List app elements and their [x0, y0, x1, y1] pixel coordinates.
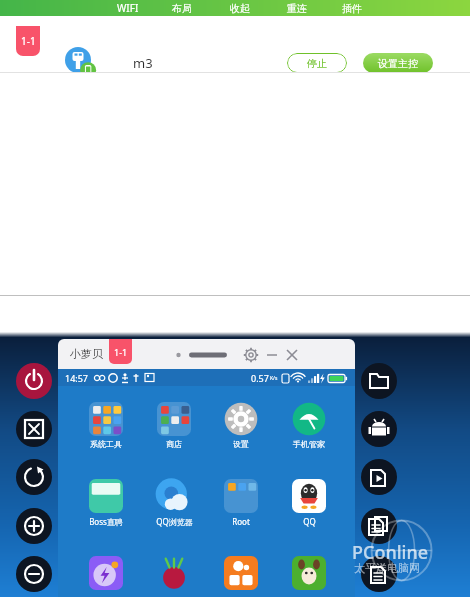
- staticText: 1-1: [114, 346, 128, 358]
- staticText: 商店: [166, 439, 182, 449]
- button[interactable]: Files: [361, 363, 397, 399]
- button[interactable]: Logs: [361, 556, 397, 592]
- staticText: 设置: [233, 439, 249, 449]
- button[interactable]: QQ: [289, 479, 329, 527]
- staticText: WIFI: [117, 1, 139, 15]
- button[interactable]: Media: [361, 459, 397, 495]
- button[interactable]: [86, 556, 126, 590]
- button[interactable]: Settings: [243, 347, 259, 363]
- staticText: 收起: [230, 2, 250, 15]
- staticText: 14:57: [65, 372, 89, 384]
- button[interactable]: Documents: [361, 508, 397, 544]
- staticText: 停止: [307, 57, 327, 70]
- button[interactable]: Boss直聘: [86, 479, 126, 527]
- staticText: m3: [133, 54, 153, 72]
- button[interactable]: Minimize: [264, 347, 280, 363]
- staticText: K/s: [270, 375, 278, 382]
- button[interactable]: Fullscreen: [16, 411, 52, 447]
- button[interactable]: [221, 556, 261, 590]
- button[interactable]: Close: [284, 347, 300, 363]
- staticText: QQ: [303, 516, 316, 527]
- staticText: Boss直聘: [89, 516, 123, 527]
- button[interactable]: 系统工具: [86, 402, 126, 449]
- button[interactable]: 重连: [287, 0, 307, 16]
- staticText: PConline: [352, 540, 429, 565]
- button[interactable]: 设置: [221, 402, 261, 449]
- button[interactable]: Apps: [361, 411, 397, 447]
- staticText: 0.57: [251, 372, 269, 384]
- staticText: 太平洋电脑网: [354, 561, 420, 575]
- button[interactable]: Zoom in: [16, 508, 52, 544]
- staticText: 插件: [342, 2, 362, 15]
- button[interactable]: 商店: [154, 402, 194, 449]
- staticText: QQ浏览器: [156, 516, 193, 527]
- staticText: 重连: [287, 2, 307, 15]
- button[interactable]: Power: [16, 363, 52, 399]
- button[interactable]: 设置主控: [363, 53, 433, 73]
- staticText: 设置主控: [378, 57, 418, 70]
- button[interactable]: 停止: [287, 53, 347, 73]
- staticText: 手机管家: [293, 439, 325, 449]
- button[interactable]: WIFI: [117, 0, 139, 16]
- button[interactable]: QQ浏览器: [154, 479, 194, 527]
- button[interactable]: 插件: [342, 0, 362, 16]
- staticText: Root: [232, 516, 250, 527]
- staticText: 1-1: [21, 34, 36, 48]
- staticText: 布局: [172, 2, 192, 15]
- button[interactable]: [154, 556, 194, 590]
- staticText: 系统工具: [90, 439, 122, 449]
- button[interactable]: Rotate: [16, 459, 52, 495]
- button[interactable]: Root: [221, 479, 261, 527]
- button[interactable]: [289, 556, 329, 590]
- button[interactable]: Zoom out: [16, 556, 52, 592]
- button[interactable]: 收起: [230, 0, 250, 16]
- staticText: 小萝贝: [70, 347, 103, 361]
- button[interactable]: 布局: [172, 0, 192, 16]
- button[interactable]: 手机管家: [289, 402, 329, 449]
